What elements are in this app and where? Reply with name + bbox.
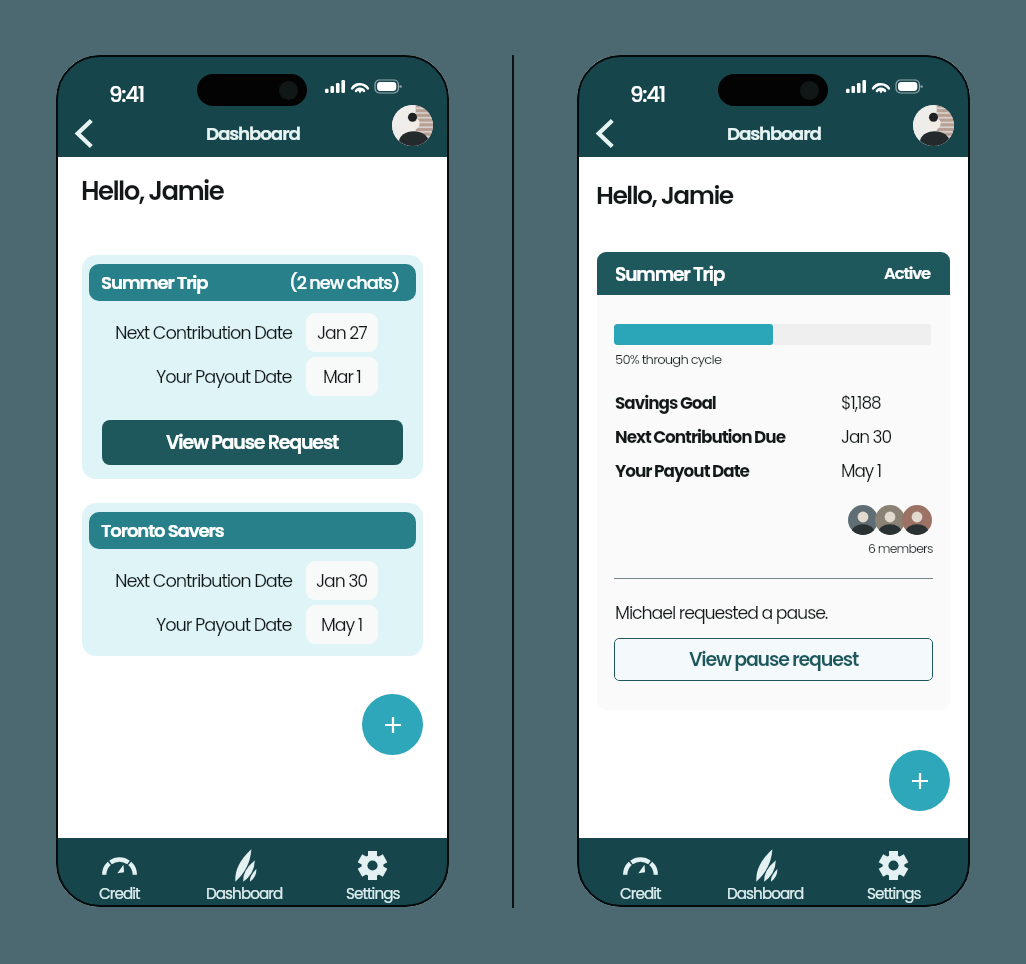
staticText: Dashboard [206,883,283,904]
button[interactable]: Create new group [889,750,950,811]
staticText: Toronto Savers [101,518,224,543]
staticText: Your Payout Date [156,612,292,637]
button[interactable]: Dashboard [197,838,292,907]
staticText: 50% through cycle [615,350,722,368]
staticText: View pause request [689,646,859,673]
staticText: Jan 27 [317,321,367,345]
staticText: Savings Goal [615,391,716,415]
staticText: Hello, Jamie [596,178,733,213]
staticText: Jan 30 [316,569,368,593]
staticText: Your Payout Date [156,364,292,389]
staticText: Next Contribution Date [115,568,292,593]
staticText: (2 new chats) [289,270,400,295]
button[interactable]: Settings [325,838,420,907]
staticText: Dashboard [727,121,821,147]
staticText: View Pause Request [166,429,339,456]
staticText: 6 members [868,540,933,557]
button[interactable]: Settings [846,838,941,907]
staticText: Active [884,262,931,285]
staticText: Summer Trip [101,270,208,295]
staticText: Credit [620,883,661,904]
button[interactable]: Summer Trip [82,255,423,479]
staticText: Michael requested a pause. [615,601,828,625]
button[interactable]: Back [583,111,627,155]
button[interactable]: Back [62,111,106,155]
button[interactable]: Credit [72,838,167,907]
staticText: Jan 30 [841,425,891,449]
button[interactable]: View Pause Request [102,420,403,465]
staticText: $1,188 [841,391,881,415]
staticText: May 1 [841,459,882,483]
staticText: Summer Trip [615,261,725,287]
staticText: Next Contribution Due [615,425,786,449]
staticText: Dashboard [206,121,300,147]
button[interactable]: View pause request [614,638,933,681]
staticText: May 1 [321,613,363,637]
staticText: 9:41 [109,80,144,110]
button[interactable]: Create new group [362,694,423,755]
staticText: Settings [867,883,921,904]
button[interactable]: Summer Trip [597,252,950,710]
staticText: Credit [99,883,140,904]
staticText: Your Payout Date [615,459,749,483]
button[interactable]: Credit [593,838,688,907]
staticText: Hello, Jamie [81,173,224,209]
button[interactable]: Dashboard [718,838,813,907]
staticText: 9:41 [630,80,665,110]
staticText: Next Contribution Date [115,320,292,345]
staticText: Mar 1 [323,365,361,389]
button[interactable]: Toronto Savers [82,503,423,656]
staticText: Settings [346,883,400,904]
staticText: Dashboard [727,883,804,904]
